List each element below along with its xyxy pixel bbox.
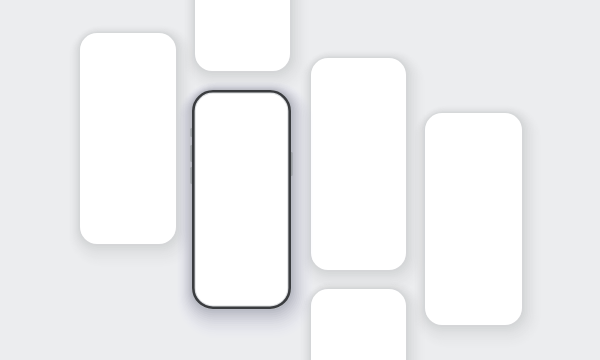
button[interactable]: Phone mockup carousel — [0, 0, 600, 360]
